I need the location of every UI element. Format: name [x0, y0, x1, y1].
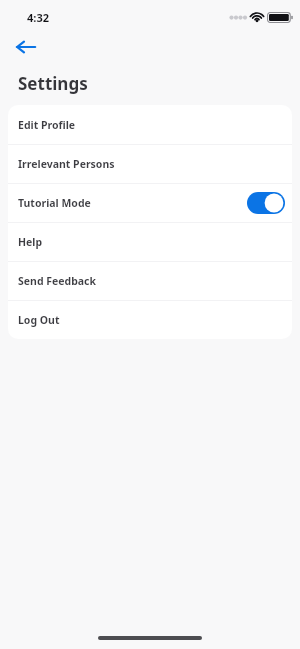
button[interactable]: Help — [8, 223, 292, 261]
staticText: Tutorial Mode — [18, 196, 91, 210]
button[interactable]: Irrelevant Persons — [8, 145, 292, 183]
button[interactable]: Tutorial Mode toggle, on — [247, 192, 285, 214]
staticText: 4:32 — [27, 10, 49, 25]
button[interactable]: Tutorial Mode — [8, 184, 292, 222]
button[interactable]: Back — [8, 32, 44, 62]
staticText: Help — [18, 235, 43, 249]
staticText: Edit Profile — [18, 118, 76, 132]
button[interactable]: Log Out — [8, 301, 292, 339]
staticText: Settings — [18, 72, 88, 95]
staticText: Send Feedback — [18, 274, 97, 288]
button[interactable]: Edit Profile — [8, 105, 292, 144]
button[interactable]: Send Feedback — [8, 262, 292, 300]
staticText: Log Out — [18, 313, 60, 327]
staticText: Irrelevant Persons — [18, 157, 115, 171]
